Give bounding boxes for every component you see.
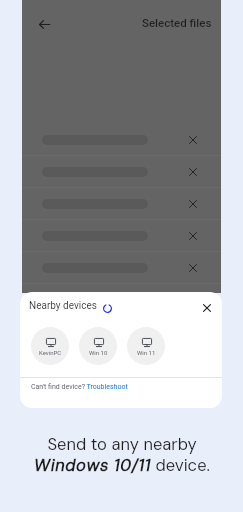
staticText: Selected files (142, 16, 212, 29)
button[interactable]: Remove file (22, 252, 221, 284)
button[interactable]: Win 10 (79, 327, 117, 365)
button[interactable]: Remove file (186, 133, 200, 147)
staticText: Nearby devices (29, 300, 97, 312)
button[interactable]: Remove file (186, 261, 200, 275)
button[interactable]: Close (199, 300, 215, 316)
button[interactable]: Back (36, 16, 52, 32)
button[interactable]: Remove file (22, 124, 221, 156)
staticText: Win 10 (89, 349, 108, 356)
button[interactable]: Remove file (22, 188, 221, 220)
button[interactable]: KevinPC (31, 327, 69, 365)
button[interactable]: Remove file (186, 165, 200, 179)
staticText: Send to any nearby (47, 434, 197, 455)
staticText: Can't find device? Troubleshoot (31, 383, 128, 391)
button[interactable]: Remove file (22, 220, 221, 252)
staticText: Win 11 (137, 349, 156, 356)
staticText: Windows 10/11 device. (34, 455, 210, 476)
button[interactable]: Remove file (186, 197, 200, 211)
button[interactable]: Can't find device? Troubleshoot (31, 383, 128, 391)
button[interactable]: Remove file (22, 156, 221, 188)
button[interactable]: Remove file (186, 229, 200, 243)
button[interactable]: Win 11 (127, 327, 165, 365)
staticText: KevinPC (39, 349, 62, 356)
